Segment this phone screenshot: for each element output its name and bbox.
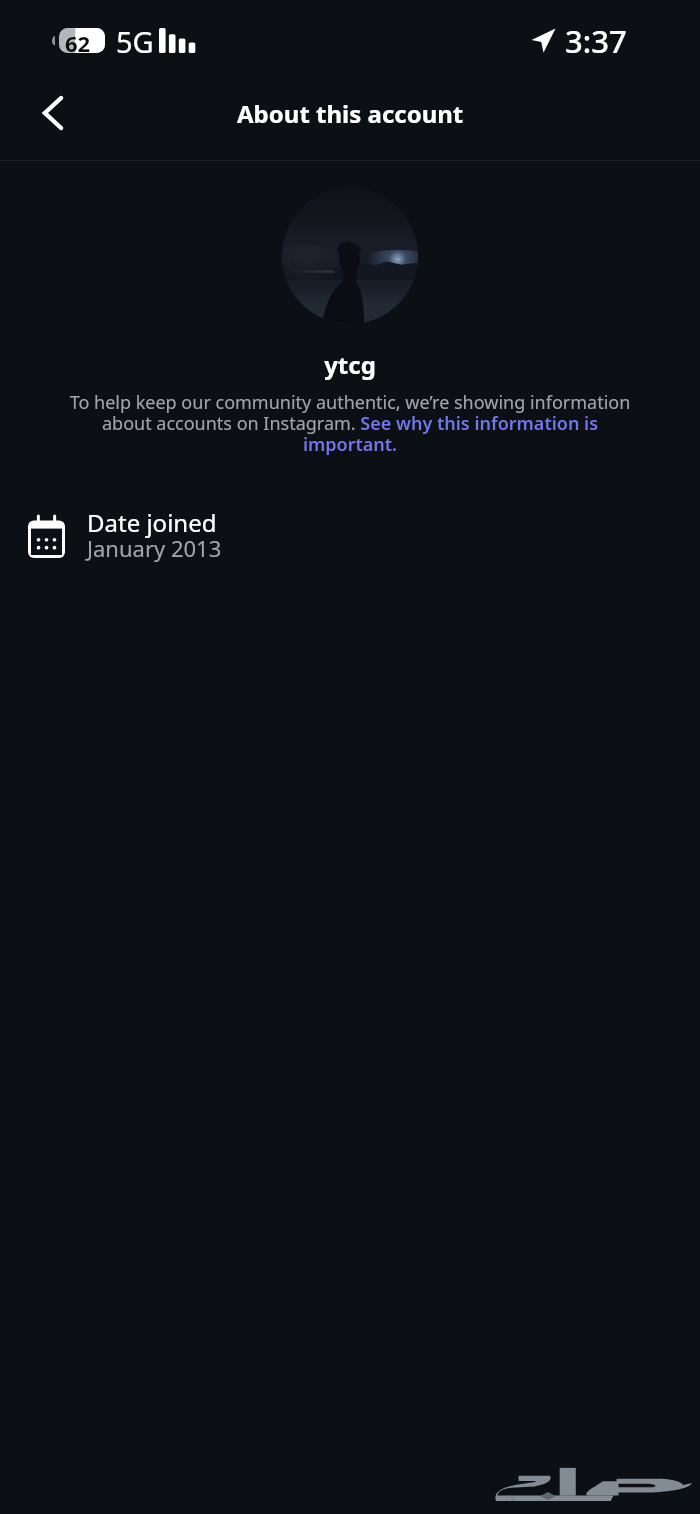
- button[interactable]: Back: [27, 88, 79, 138]
- button[interactable]: See why this information is important.: [300, 411, 604, 453]
- button[interactable]: Date joined: [0, 504, 700, 570]
- staticText: 5G: [116, 22, 154, 61]
- other: Haraj watermark: [496, 1462, 692, 1504]
- staticText: 62: [65, 28, 91, 53]
- staticText: ytcg: [0, 348, 700, 381]
- staticText: About this account: [237, 97, 464, 130]
- staticText: 3:37: [565, 20, 627, 62]
- staticText: January 2013: [87, 533, 222, 563]
- staticText: Date joined: [87, 506, 217, 539]
- staticText: To help keep our community authentic, we…: [55, 390, 645, 457]
